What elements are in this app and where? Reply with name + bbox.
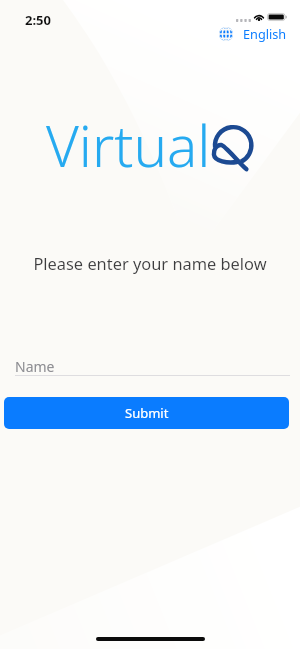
button[interactable]: Submit [4,397,289,429]
button[interactable]: Change language [215,22,291,45]
button[interactable]: Name [15,357,290,383]
other: Change language [219,27,233,41]
staticText: Submit [125,404,169,422]
staticText: 2:50 [25,11,51,29]
staticText: English [243,25,287,42]
staticText: Name [15,357,55,376]
staticText: Virtual [46,107,211,184]
staticText: Please enter your name below [0,252,300,274]
